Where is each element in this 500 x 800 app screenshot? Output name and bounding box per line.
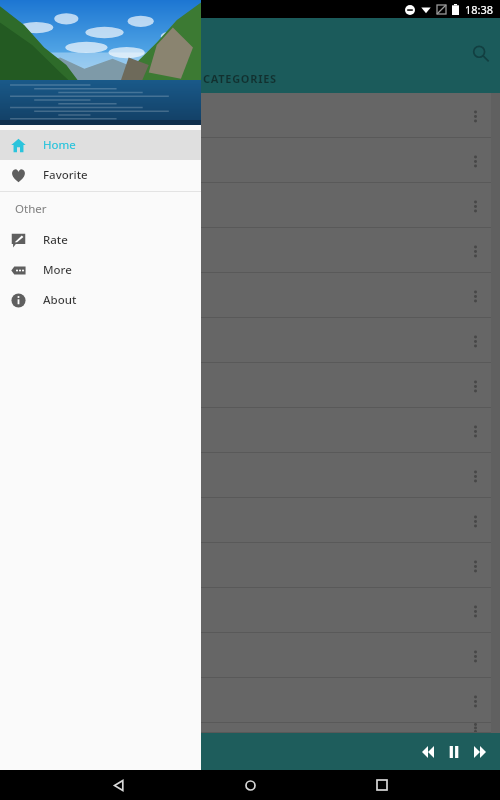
button[interactable]: More options (461, 147, 489, 175)
button[interactable]: Home (0, 130, 201, 160)
button[interactable]: More options (0, 183, 500, 228)
button[interactable]: More options (0, 588, 500, 633)
button[interactable]: More options (0, 318, 500, 363)
button[interactable]: More options (461, 597, 489, 625)
button[interactable]: CATEGORIES (180, 63, 300, 93)
button[interactable]: More options (0, 678, 500, 723)
button[interactable]: More options (0, 723, 500, 733)
button[interactable]: More options (461, 507, 489, 535)
button[interactable]: More options (0, 453, 500, 498)
button[interactable]: Recent apps (369, 772, 395, 798)
button[interactable]: More options (461, 552, 489, 580)
staticText: More (43, 262, 72, 278)
button[interactable]: More options (0, 93, 500, 138)
button[interactable]: More options (461, 282, 489, 310)
staticText: Home (43, 137, 76, 153)
button[interactable]: More options (0, 498, 500, 543)
button[interactable]: More options (0, 138, 500, 183)
button[interactable]: More options (461, 237, 489, 265)
button[interactable]: More options (461, 642, 489, 670)
button[interactable]: More options (461, 723, 489, 733)
button[interactable]: About (0, 285, 201, 315)
button[interactable]: More options (461, 417, 489, 445)
staticText: RECENTLY ADDED (37, 71, 143, 86)
button[interactable]: More options (461, 372, 489, 400)
button[interactable]: More options (0, 228, 500, 273)
button[interactable]: Back (106, 772, 132, 798)
staticText: Rate (43, 232, 68, 248)
button[interactable]: More options (461, 687, 489, 715)
button[interactable]: More options (0, 543, 500, 588)
button[interactable]: Previous (415, 739, 441, 765)
button[interactable]: Pause (441, 739, 467, 765)
staticText: 18:38 (465, 2, 494, 17)
button[interactable]: More options (0, 273, 500, 318)
button[interactable]: More (0, 255, 201, 285)
button[interactable]: More options (461, 462, 489, 490)
button[interactable]: More options (461, 327, 489, 355)
button[interactable]: More options (461, 102, 489, 130)
staticText: Favorite (43, 167, 88, 183)
staticText: About (43, 292, 77, 308)
staticText: CATEGORIES (203, 71, 277, 86)
button[interactable]: More options (0, 363, 500, 408)
button[interactable]: Home (237, 772, 263, 798)
button[interactable]: RECENTLY ADDED (0, 63, 180, 93)
button[interactable]: Next (467, 739, 493, 765)
button[interactable]: More options (461, 192, 489, 220)
button[interactable]: Search (464, 37, 496, 69)
staticText: Other (15, 201, 47, 217)
button[interactable]: More options (0, 408, 500, 453)
button[interactable]: Rate (0, 225, 201, 255)
button[interactable]: Favorite (0, 160, 201, 190)
button[interactable]: More options (0, 633, 500, 678)
